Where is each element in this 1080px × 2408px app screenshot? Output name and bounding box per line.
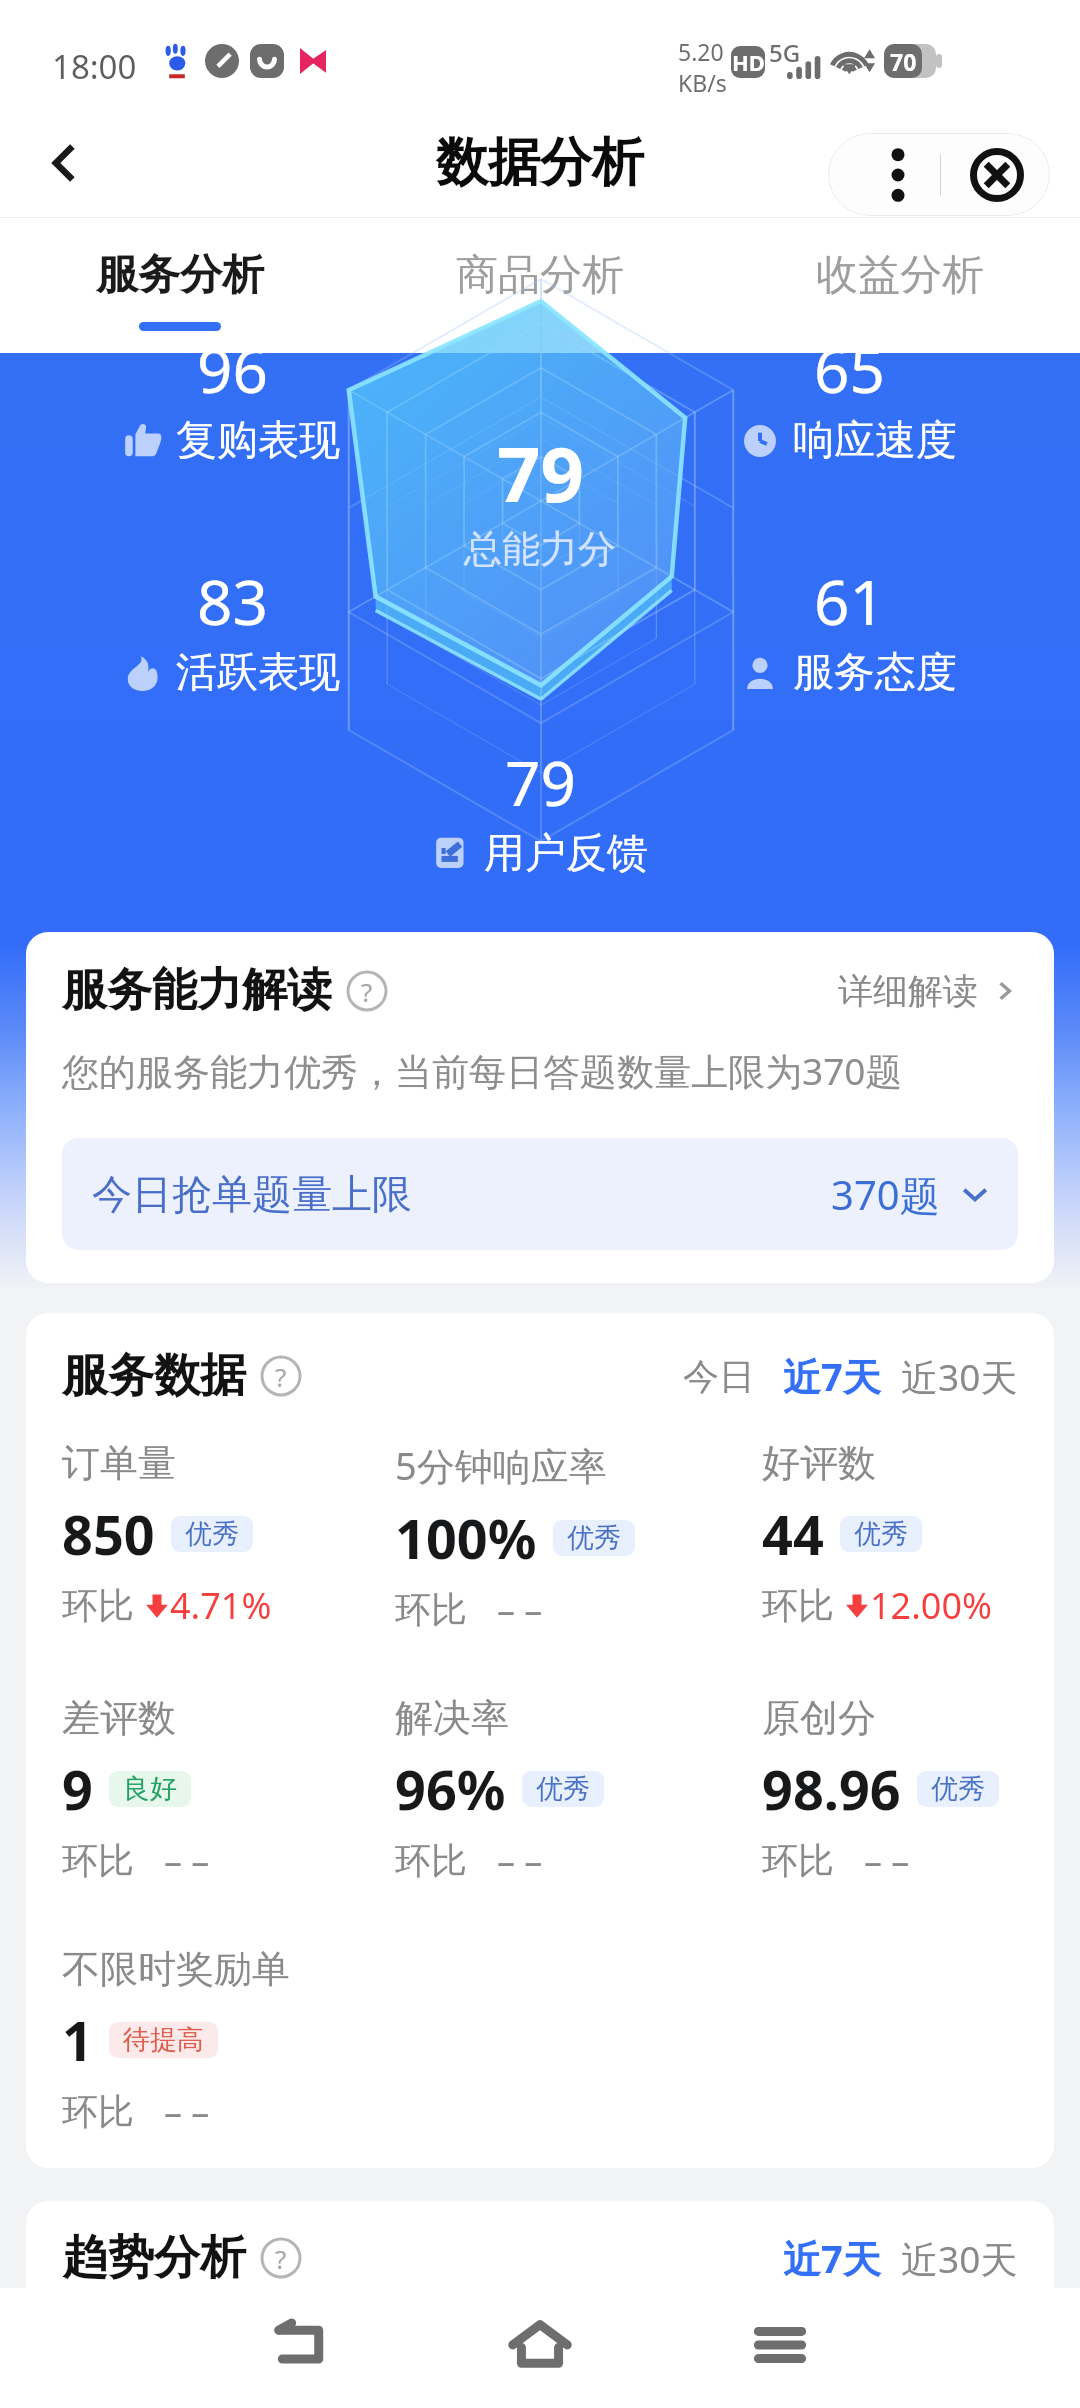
button[interactable]: 收益分析 bbox=[720, 218, 1080, 353]
staticText: 服务数据 bbox=[62, 1347, 246, 1405]
button[interactable]: 服务分析 bbox=[0, 218, 360, 353]
staticText: 商品分析 bbox=[456, 249, 624, 302]
staticText: 70 bbox=[890, 46, 917, 77]
staticText: 您的服务能力优秀，当前每日答题数量上限为370题 bbox=[62, 1045, 903, 1096]
staticText: 今日抢单题量上限 bbox=[92, 1169, 412, 1219]
button[interactable]: Back bbox=[250, 2298, 350, 2398]
staticText: 不限时奖励单 bbox=[62, 1945, 290, 1993]
staticText: 370题 bbox=[831, 1167, 940, 1222]
button[interactable]: 近7天 bbox=[783, 1350, 881, 1402]
button[interactable]: More options bbox=[858, 133, 938, 216]
staticText: 收益分析 bbox=[816, 249, 984, 302]
staticText: 订单量 bbox=[62, 1439, 176, 1487]
button[interactable]: Close bbox=[955, 133, 1039, 216]
staticText: 详细解读 bbox=[838, 969, 978, 1013]
staticText: ? bbox=[361, 974, 373, 1009]
button[interactable]: 近30天 bbox=[901, 1351, 1018, 1402]
staticText: 优秀 bbox=[854, 1517, 908, 1551]
staticText: KB/s bbox=[678, 67, 727, 98]
staticText: 79 bbox=[505, 740, 576, 824]
staticText: 65 bbox=[814, 327, 885, 411]
staticText: 61 bbox=[814, 559, 885, 643]
staticText: 环比 bbox=[395, 1838, 467, 1883]
staticText: – – bbox=[497, 1836, 543, 1885]
staticText: 12.00% bbox=[870, 1581, 992, 1630]
staticText: 数据分析 bbox=[436, 130, 644, 196]
staticText: 44 bbox=[762, 1497, 824, 1571]
staticText: 优秀 bbox=[185, 1517, 239, 1551]
staticText: 总能力分 bbox=[464, 525, 616, 573]
button[interactable]: 近7天 bbox=[783, 2232, 881, 2284]
staticText: 服务态度 bbox=[793, 647, 957, 699]
staticText: 复购表现 bbox=[176, 415, 340, 467]
staticText: 850 bbox=[62, 1497, 155, 1571]
staticText: – – bbox=[864, 1836, 910, 1885]
button[interactable]: 近30天 bbox=[901, 2233, 1018, 2284]
staticText: 96% bbox=[395, 1752, 506, 1826]
staticText: 差评数 bbox=[62, 1694, 176, 1742]
staticText: 98.96 bbox=[762, 1752, 901, 1826]
staticText: 优秀 bbox=[536, 1772, 590, 1806]
staticText: 活跃表现 bbox=[176, 647, 340, 699]
button[interactable]: Back bbox=[30, 128, 100, 198]
staticText: 待提高 bbox=[123, 2023, 204, 2057]
staticText: 环比 bbox=[62, 1838, 134, 1883]
button[interactable]: 今日 bbox=[683, 1354, 755, 1399]
staticText: 解决率 bbox=[395, 1694, 509, 1742]
staticText: HD bbox=[732, 47, 765, 77]
staticText: – – bbox=[164, 2087, 210, 2136]
staticText: 环比 bbox=[62, 2089, 134, 2134]
staticText: 服务能力解读 bbox=[62, 962, 332, 1019]
staticText: 用户反馈 bbox=[484, 828, 648, 880]
button[interactable]: 商品分析 bbox=[360, 218, 720, 353]
staticText: – – bbox=[164, 1836, 210, 1885]
staticText: 响应速度 bbox=[793, 415, 957, 467]
staticText: 近30天 bbox=[901, 1351, 1018, 1402]
staticText: 9 bbox=[62, 1752, 93, 1826]
staticText: 近7天 bbox=[783, 2232, 881, 2284]
button[interactable]: Recent apps bbox=[730, 2298, 830, 2398]
staticText: 79 bbox=[497, 421, 584, 525]
staticText: 原创分 bbox=[762, 1694, 876, 1742]
staticText: 近7天 bbox=[783, 1350, 881, 1402]
staticText: 83 bbox=[197, 559, 268, 643]
staticText: 环比 bbox=[62, 1583, 134, 1628]
staticText: 环比 bbox=[395, 1587, 467, 1632]
staticText: 5G bbox=[769, 36, 801, 69]
staticText: – – bbox=[497, 1585, 543, 1634]
staticText: 4.71% bbox=[170, 1581, 272, 1630]
staticText: 100% bbox=[395, 1501, 537, 1575]
staticText: 优秀 bbox=[931, 1772, 985, 1806]
staticText: 环比 bbox=[762, 1838, 834, 1883]
staticText: 好评数 bbox=[762, 1439, 876, 1487]
staticText: 趋势分析 bbox=[62, 2229, 246, 2287]
staticText: 服务分析 bbox=[96, 249, 264, 302]
staticText: ? bbox=[275, 1359, 287, 1394]
staticText: 良好 bbox=[123, 1772, 177, 1806]
staticText: 近30天 bbox=[901, 2233, 1018, 2284]
button[interactable]: 详细解读 bbox=[838, 969, 1018, 1013]
staticText: ? bbox=[275, 2241, 287, 2276]
staticText: 环比 bbox=[762, 1583, 834, 1628]
staticText: 5分钟响应率 bbox=[395, 1439, 607, 1491]
staticText: 今日 bbox=[683, 1354, 755, 1399]
staticText: 5.20 bbox=[678, 36, 724, 67]
staticText: 18:00 bbox=[52, 44, 137, 89]
button[interactable]: 今日抢单题量上限 bbox=[62, 1138, 1018, 1250]
staticText: 优秀 bbox=[567, 1521, 621, 1555]
button[interactable]: Home bbox=[485, 2293, 595, 2403]
staticText: 1 bbox=[62, 2003, 93, 2077]
staticText: 96 bbox=[197, 327, 268, 411]
